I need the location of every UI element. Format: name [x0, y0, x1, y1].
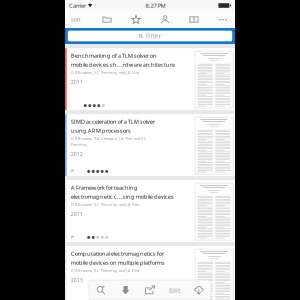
staticText: SIMD acceleration of a TLM solver [71, 118, 155, 125]
staticText: A Framework for teaching [71, 184, 138, 191]
staticText: Carrier [69, 2, 86, 9]
staticText: 8:27 PM [145, 2, 165, 9]
staticText: Computational electromagnetics for [71, 250, 164, 257]
staticText: D R Browne, S C Pomeroy, and J A Flint [71, 268, 139, 273]
button[interactable]: SIMD acceleration of a TLM solver [65, 114, 235, 176]
staticText: 2011 [71, 210, 83, 217]
button[interactable]: Authors [154, 12, 175, 27]
staticText: 2011 [71, 78, 83, 85]
staticText: D R Browne, Y A Choutara, J A Flint, and… [71, 136, 147, 141]
staticText: Filter [146, 32, 162, 40]
button[interactable]: Share [138, 280, 162, 300]
button[interactable]: Edit [162, 280, 187, 300]
staticText: D R Browne, S C Pomeroy, and J A Flint [71, 202, 139, 207]
staticText: D R Browne, S C Pomeroy, and J A Flint [71, 70, 139, 75]
button[interactable]: A Framework for teaching [65, 180, 235, 242]
button[interactable]: Sync [187, 280, 211, 300]
staticText: using ARM processors [71, 126, 131, 134]
button[interactable]: Sort [70, 11, 88, 28]
button[interactable]: Filter [65, 28, 235, 44]
button[interactable]: Favourites [125, 12, 146, 27]
button[interactable]: Download [113, 280, 138, 300]
staticText: mobile devices on multiple platforms [71, 258, 165, 266]
staticText: mobile devices sh...rdware architecture [71, 60, 175, 68]
button[interactable]: Benchmarking of a TLM solver on [65, 48, 235, 110]
staticText: 2012 [71, 150, 83, 157]
staticText: 2013 [71, 276, 83, 283]
staticText: electromagnetic c...sing mobile devices [71, 192, 174, 200]
button[interactable]: More [212, 12, 233, 27]
staticText: Sort [70, 16, 80, 23]
button[interactable]: Collections [96, 12, 117, 27]
staticText: Pomeroy [71, 142, 87, 147]
button[interactable]: Computational electromagnetics for [65, 246, 235, 300]
staticText: Edit [169, 286, 180, 294]
staticText: Benchmarking of a TLM solver on [71, 52, 157, 59]
button[interactable]: Journals [183, 12, 204, 27]
button[interactable]: Search [89, 280, 113, 300]
